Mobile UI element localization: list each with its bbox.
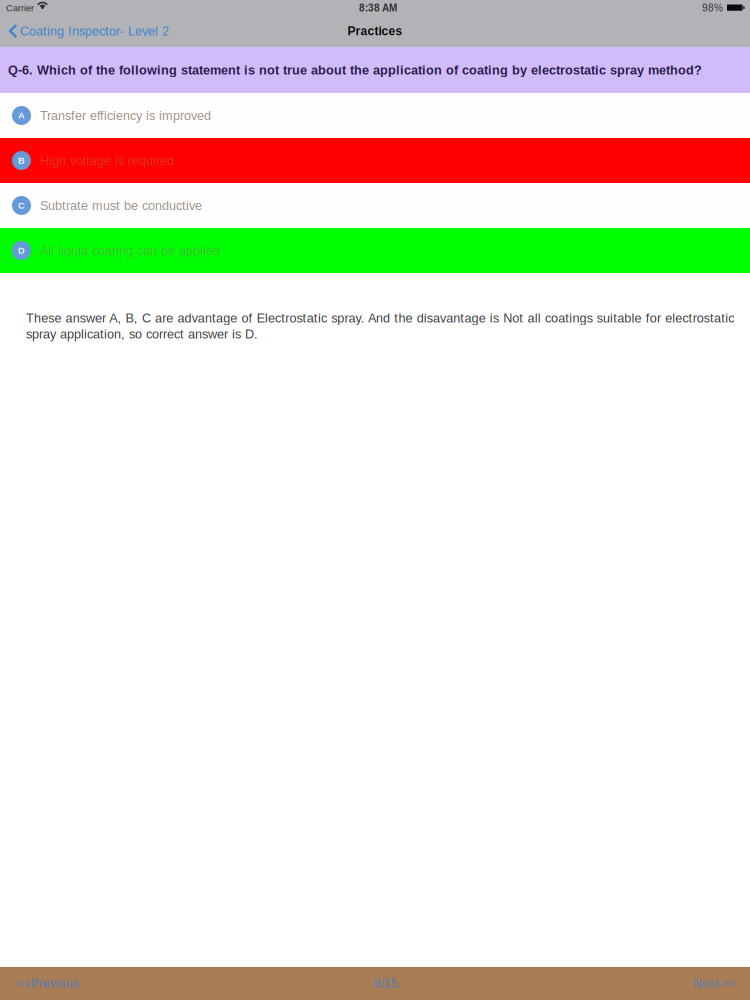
staticText: Next >>: [693, 977, 735, 990]
staticText: B: [18, 155, 25, 166]
staticText: These answer A, B, C are advantage of El…: [26, 311, 734, 325]
button[interactable]: Next >>: [681, 967, 750, 1000]
staticText: Q-6. Which of the following statement is…: [8, 63, 702, 77]
staticText: spray application, so correct answer is …: [26, 327, 258, 341]
staticText: 8:38 AM: [359, 2, 397, 14]
staticText: A: [18, 110, 25, 121]
staticText: High voltage is required: [40, 153, 174, 168]
staticText: C: [18, 200, 25, 211]
button[interactable]: C: [0, 183, 750, 228]
button[interactable]: Coating Inspector- Level 2: [0, 20, 179, 42]
staticText: 98%: [702, 2, 723, 14]
staticText: Coating Inspector- Level 2: [20, 24, 169, 38]
button[interactable]: B: [0, 138, 750, 183]
staticText: All liquid coating can be applied: [40, 243, 220, 258]
staticText: D: [18, 245, 25, 256]
staticText: 6/15: [374, 977, 398, 990]
button[interactable]: <<Previous: [0, 967, 91, 1000]
staticText: Transfer efficiency is improved: [40, 108, 211, 123]
staticText: Carrier: [6, 3, 34, 13]
button[interactable]: 6/15: [362, 967, 410, 1000]
staticText: Practices: [347, 24, 402, 38]
button[interactable]: D: [0, 228, 750, 273]
staticText: <<Previous: [17, 977, 79, 990]
button[interactable]: A: [0, 93, 750, 138]
staticText: Subtrate must be conductive: [40, 198, 202, 213]
